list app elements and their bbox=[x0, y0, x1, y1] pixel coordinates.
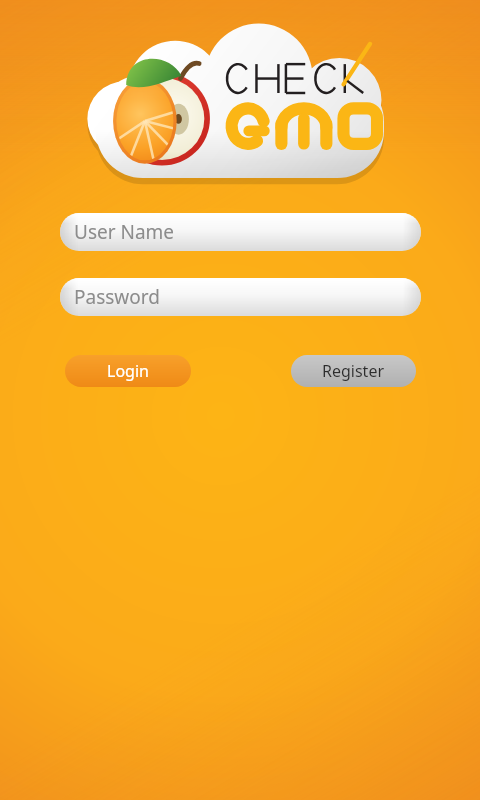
staticText: User Name bbox=[74, 219, 175, 245]
button[interactable]: Login bbox=[65, 355, 191, 387]
staticText: Login bbox=[107, 360, 149, 382]
button[interactable]: Register bbox=[291, 355, 416, 387]
staticText: Register bbox=[322, 360, 385, 382]
staticText: Password bbox=[74, 284, 160, 310]
button[interactable]: User Name bbox=[60, 213, 421, 251]
button[interactable]: Password bbox=[60, 278, 421, 316]
